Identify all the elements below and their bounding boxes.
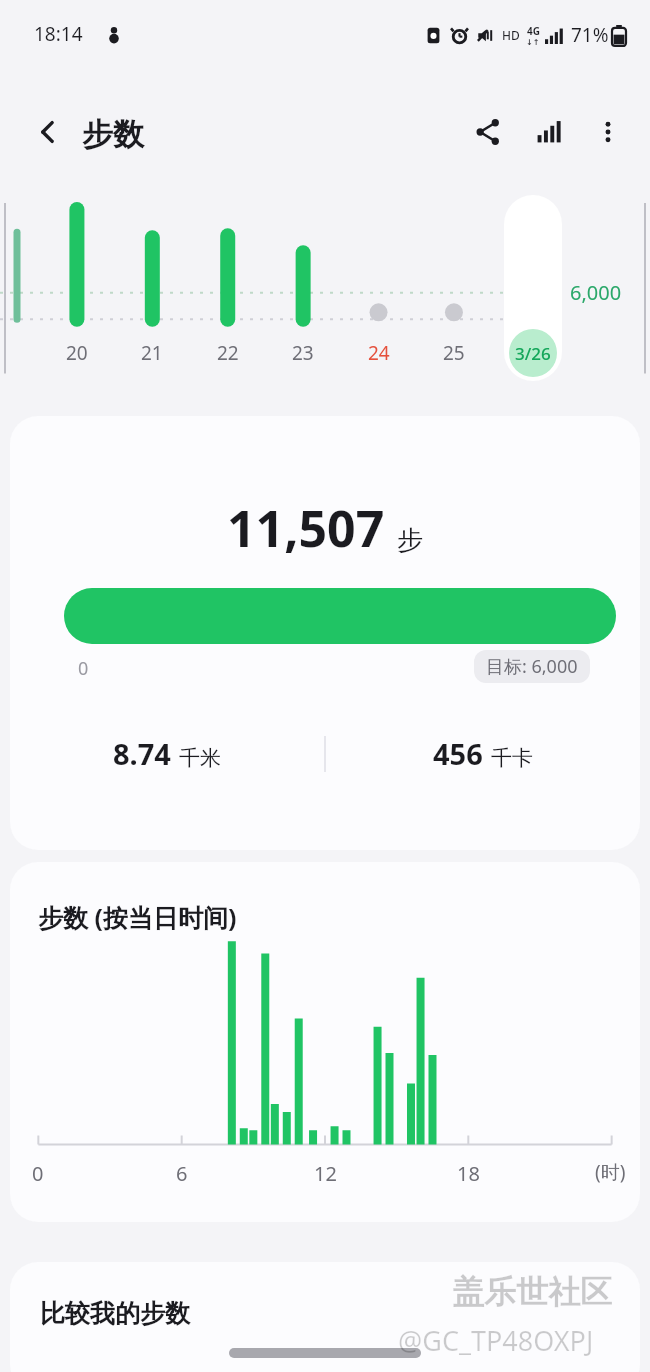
staticText: 4G: [527, 24, 540, 38]
staticText: 18: [457, 1160, 480, 1187]
staticText: 11,507: [227, 494, 385, 562]
staticText: 6,000: [570, 279, 622, 306]
staticText: 21: [141, 340, 163, 366]
staticText: 25: [443, 340, 465, 366]
staticText: 8.74: [113, 734, 171, 773]
staticText: 步: [397, 524, 423, 557]
staticText: 0: [32, 1160, 44, 1187]
staticText: @GC_TP48OXPJ: [398, 1322, 594, 1359]
staticText: 24: [368, 340, 390, 366]
staticText: 12: [314, 1160, 337, 1187]
staticText: 23: [292, 340, 314, 366]
button[interactable]: 比较我的步数: [10, 1262, 640, 1372]
button[interactable]: 3/26: [504, 195, 562, 381]
staticText: 6: [176, 1160, 188, 1187]
staticText: (时): [595, 1159, 626, 1185]
staticText: 18:14: [34, 21, 83, 47]
staticText: 0: [78, 656, 89, 681]
staticText: 千卡: [491, 745, 533, 771]
staticText: 3/26: [515, 342, 551, 365]
staticText: 步数 (按当日时间): [38, 900, 237, 934]
staticText: ↓↑: [526, 38, 540, 47]
button[interactable]: 步数 (按当日时间): [10, 862, 640, 1222]
staticText: 比较我的步数: [40, 1298, 190, 1329]
staticText: 千米: [179, 745, 221, 771]
staticText: 71%: [571, 22, 609, 48]
button[interactable]: 11,507: [10, 416, 640, 850]
staticText: 456: [433, 734, 483, 773]
button[interactable]: More options: [580, 104, 636, 160]
staticText: 22: [217, 340, 239, 366]
staticText: 20: [66, 340, 88, 366]
staticText: 目标: 6,000: [486, 654, 578, 679]
button[interactable]: Back: [22, 106, 74, 158]
button[interactable]: Chart: [520, 104, 576, 160]
staticText: HD: [502, 27, 520, 43]
button[interactable]: Share: [460, 104, 516, 160]
staticText: 步数: [82, 115, 144, 154]
staticText: 盖乐世社区: [452, 1272, 612, 1312]
